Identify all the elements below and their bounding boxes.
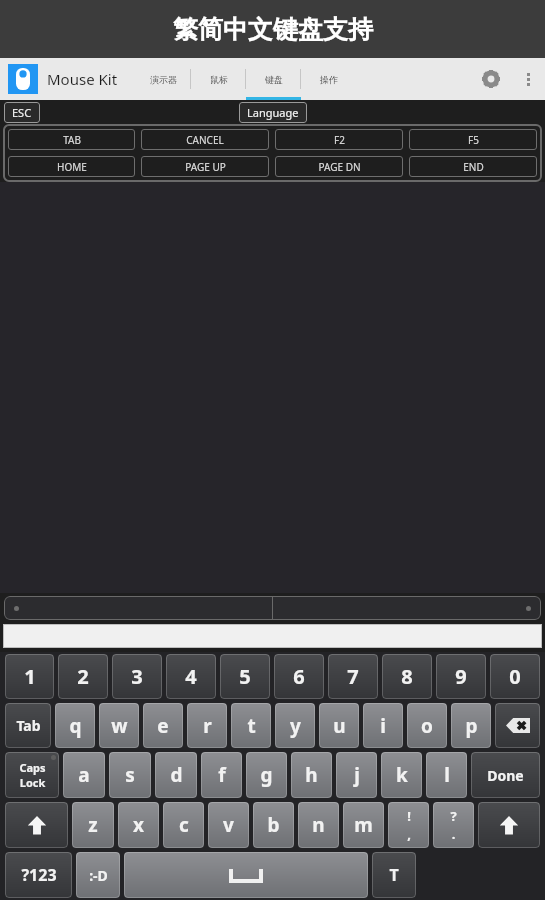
staticText: c	[179, 812, 189, 838]
button[interactable]: Caps Lock	[5, 752, 59, 798]
button[interactable]: t	[231, 703, 271, 748]
staticText: T	[389, 864, 399, 886]
button[interactable]: 4	[166, 654, 216, 699]
staticText: :-D	[89, 866, 108, 885]
button[interactable]: w	[99, 703, 139, 748]
button[interactable]: ESC	[4, 102, 40, 123]
button[interactable]: f	[201, 752, 242, 798]
button[interactable]: :-D	[76, 852, 120, 898]
button[interactable]: Space	[124, 852, 368, 898]
staticText: 3	[131, 663, 143, 690]
staticText: v	[223, 812, 234, 838]
staticText: u	[333, 713, 346, 739]
button[interactable]: ? .	[433, 802, 474, 848]
button[interactable]: END	[409, 156, 537, 177]
button[interactable]: 演示器	[136, 58, 191, 100]
button[interactable]	[3, 624, 542, 648]
button[interactable]: q	[55, 703, 95, 748]
button[interactable]: 操作	[301, 58, 356, 100]
button[interactable]: 0	[490, 654, 540, 699]
button[interactable]: Backspace	[495, 703, 540, 748]
staticText: y	[290, 713, 301, 739]
staticText: 8	[401, 663, 413, 690]
staticText: b	[267, 812, 280, 838]
button[interactable]: a	[63, 752, 105, 798]
button[interactable]: 7	[328, 654, 378, 699]
button[interactable]: n	[298, 802, 339, 848]
button[interactable]: PAGE DN	[275, 156, 403, 177]
button[interactable]: More options	[511, 62, 545, 96]
button[interactable]: m	[343, 802, 384, 848]
button[interactable]: u	[319, 703, 359, 748]
button[interactable]: ! ,	[388, 802, 429, 848]
staticText: 键盘	[265, 74, 283, 85]
button[interactable]: Mouse Kit	[8, 64, 38, 94]
button[interactable]: 键盘	[246, 58, 301, 100]
staticText: TAB	[63, 133, 81, 147]
staticText: Mouse Kit	[47, 69, 118, 89]
button[interactable]: Right click	[273, 596, 541, 620]
button[interactable]: h	[291, 752, 332, 798]
button[interactable]: 8	[382, 654, 432, 699]
button[interactable]: 3	[112, 654, 162, 699]
button[interactable]: PAGE UP	[141, 156, 269, 177]
staticText: Tab	[16, 716, 41, 735]
button[interactable]: 1	[5, 654, 54, 699]
staticText: PAGE DN	[318, 160, 361, 174]
button[interactable]: Tab	[5, 703, 51, 748]
staticText: 1	[24, 663, 36, 690]
button[interactable]: p	[451, 703, 491, 748]
staticText: 5	[239, 663, 251, 690]
button[interactable]: HOME	[8, 156, 135, 177]
staticText: d	[170, 762, 183, 788]
staticText: 0	[509, 663, 521, 690]
button[interactable]: T	[372, 852, 416, 898]
button[interactable]: o	[407, 703, 447, 748]
staticText: m	[354, 812, 373, 838]
staticText: 鼠标	[210, 74, 228, 85]
button[interactable]: Shift	[5, 802, 68, 848]
staticText: w	[111, 713, 128, 739]
button[interactable]: y	[275, 703, 315, 748]
button[interactable]: F2	[275, 129, 403, 150]
button[interactable]: 鼠标	[191, 58, 246, 100]
button[interactable]: ?123	[5, 852, 72, 898]
button[interactable]: z	[72, 802, 114, 848]
staticText: f	[218, 762, 226, 788]
staticText: Caps Lock	[19, 760, 46, 790]
button[interactable]: s	[109, 752, 151, 798]
button[interactable]: 9	[436, 654, 486, 699]
button[interactable]: 2	[58, 654, 108, 699]
staticText: ? .	[450, 807, 457, 843]
button[interactable]: x	[118, 802, 159, 848]
button[interactable]: TAB	[8, 129, 135, 150]
button[interactable]: Shift right	[478, 802, 540, 848]
staticText: j	[354, 762, 360, 788]
button[interactable]: v	[208, 802, 249, 848]
button[interactable]: F5	[409, 129, 537, 150]
staticText: 演示器	[150, 74, 177, 85]
button[interactable]: d	[155, 752, 197, 798]
button[interactable]: l	[426, 752, 467, 798]
button[interactable]: Settings	[471, 59, 511, 99]
button[interactable]: CANCEL	[141, 129, 269, 150]
button[interactable]: e	[143, 703, 183, 748]
button[interactable]: k	[381, 752, 422, 798]
button[interactable]: j	[336, 752, 377, 798]
button[interactable]: Done	[471, 752, 540, 798]
button[interactable]: Language	[239, 102, 307, 123]
button[interactable]: 6	[274, 654, 324, 699]
button[interactable]: b	[253, 802, 294, 848]
staticText: i	[380, 713, 386, 739]
button[interactable]: 5	[220, 654, 270, 699]
staticText: s	[125, 762, 135, 788]
button[interactable]: Left click	[4, 596, 272, 620]
staticText: CANCEL	[186, 133, 224, 147]
staticText: p	[465, 713, 478, 739]
button[interactable]: c	[163, 802, 204, 848]
button[interactable]: i	[363, 703, 403, 748]
staticText: ! ,	[407, 807, 411, 843]
button[interactable]: r	[187, 703, 227, 748]
button[interactable]: g	[246, 752, 287, 798]
